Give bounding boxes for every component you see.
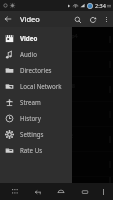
button[interactable]: Recent apps [73, 183, 97, 200]
button[interactable]: holiday_N072 [0, 127, 113, 151]
staticText: History [20, 114, 41, 122]
button[interactable]: SAM_3402.mp4 [0, 27, 113, 51]
button[interactable]: movie_trailer [0, 102, 113, 126]
staticText: Rate Us [20, 146, 43, 154]
button[interactable]: Hide navigation [97, 183, 110, 200]
button[interactable]: Settings [0, 126, 72, 142]
staticText: 2:34 [95, 2, 106, 9]
button[interactable]: Refresh [85, 12, 100, 27]
button[interactable]: Apps [3, 183, 26, 200]
staticText: Local Network [20, 82, 62, 90]
button[interactable]: Directories [0, 62, 72, 78]
staticText: 02:11 [38, 115, 50, 121]
button[interactable]: Rate Us [0, 142, 72, 158]
staticText: VID_20190118 [38, 82, 75, 89]
button[interactable]: clip_sunset [0, 52, 113, 76]
staticText: SAM_3402.mp4 [38, 32, 78, 39]
button[interactable]: Local Network [0, 78, 72, 94]
button[interactable]: short_18 [0, 177, 113, 183]
staticText: holiday_N072 [38, 132, 73, 139]
button[interactable]: Audio [0, 46, 72, 62]
staticText: Audio [20, 50, 37, 58]
staticText: Video [20, 34, 38, 42]
button[interactable]: More options [100, 13, 113, 26]
button[interactable]: Video [0, 30, 72, 46]
staticText: Settings [20, 130, 44, 138]
button[interactable]: VID_20190118 [0, 77, 113, 101]
button[interactable]: Search [70, 12, 85, 27]
button[interactable]: Back [26, 183, 49, 200]
staticText: Video [20, 14, 40, 24]
staticText: Stream [20, 98, 41, 106]
staticText: 01:42 [38, 65, 50, 71]
button[interactable]: beach_day [0, 152, 113, 176]
button[interactable]: Back [0, 11, 16, 27]
button[interactable]: Stream [0, 94, 72, 110]
button[interactable]: History [0, 110, 72, 126]
staticText: Directories [20, 66, 52, 74]
button[interactable]: Home [49, 183, 73, 200]
